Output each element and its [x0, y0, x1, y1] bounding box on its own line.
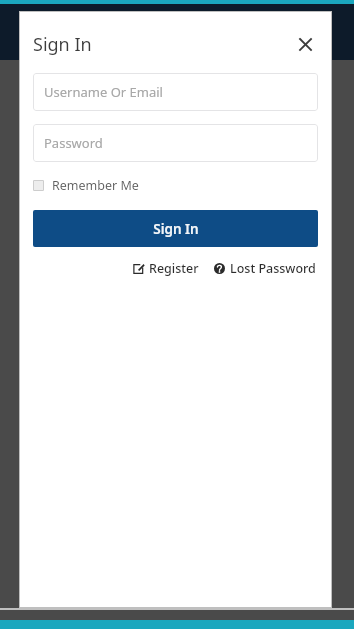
staticText: Remember Me [52, 177, 139, 194]
button[interactable]: Lost Password [212, 258, 318, 279]
button[interactable]: Sign In [33, 210, 318, 247]
button[interactable]: Username Or Email [33, 73, 318, 111]
button[interactable]: Register [131, 258, 201, 279]
button[interactable]: Remember Me [33, 175, 139, 196]
staticText: Lost Password [230, 260, 316, 277]
button[interactable]: Password [33, 124, 318, 162]
staticText: Password [44, 134, 103, 152]
button[interactable]: Close [292, 31, 318, 57]
staticText: Sign In [153, 220, 199, 238]
staticText: Sign In [33, 32, 92, 57]
staticText: Username Or Email [44, 83, 163, 101]
staticText: Register [149, 260, 199, 277]
